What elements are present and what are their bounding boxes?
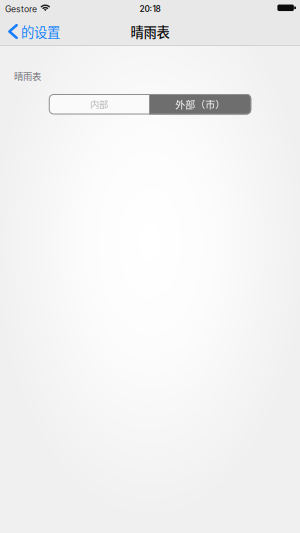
staticText: Gestore [5, 4, 37, 14]
staticText: 内部 [90, 97, 108, 111]
staticText: 20:18 [139, 4, 160, 14]
staticText: 晴雨表 [14, 69, 41, 83]
button[interactable]: 外部（市） [149, 94, 251, 114]
button[interactable]: 的设置 [0, 16, 70, 46]
staticText: 的设置 [21, 22, 60, 41]
button[interactable]: 内部 [49, 94, 149, 114]
staticText: 晴雨表 [130, 22, 169, 41]
staticText: 外部（市） [175, 97, 225, 111]
